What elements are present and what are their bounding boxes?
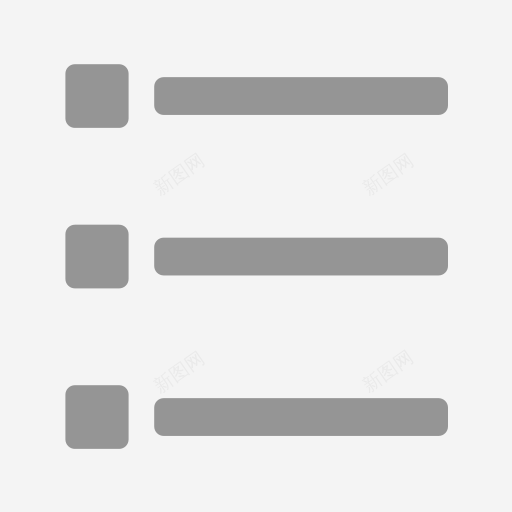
staticText: 新图网 — [151, 163, 208, 186]
button[interactable]: Third list item — [65, 385, 448, 449]
button[interactable]: First list item — [65, 64, 448, 128]
staticText: 新图网 — [360, 163, 417, 186]
button[interactable]: Second list item — [65, 225, 448, 288]
staticText: 新图网 — [151, 360, 208, 383]
staticText: 新图网 — [359, 360, 416, 383]
